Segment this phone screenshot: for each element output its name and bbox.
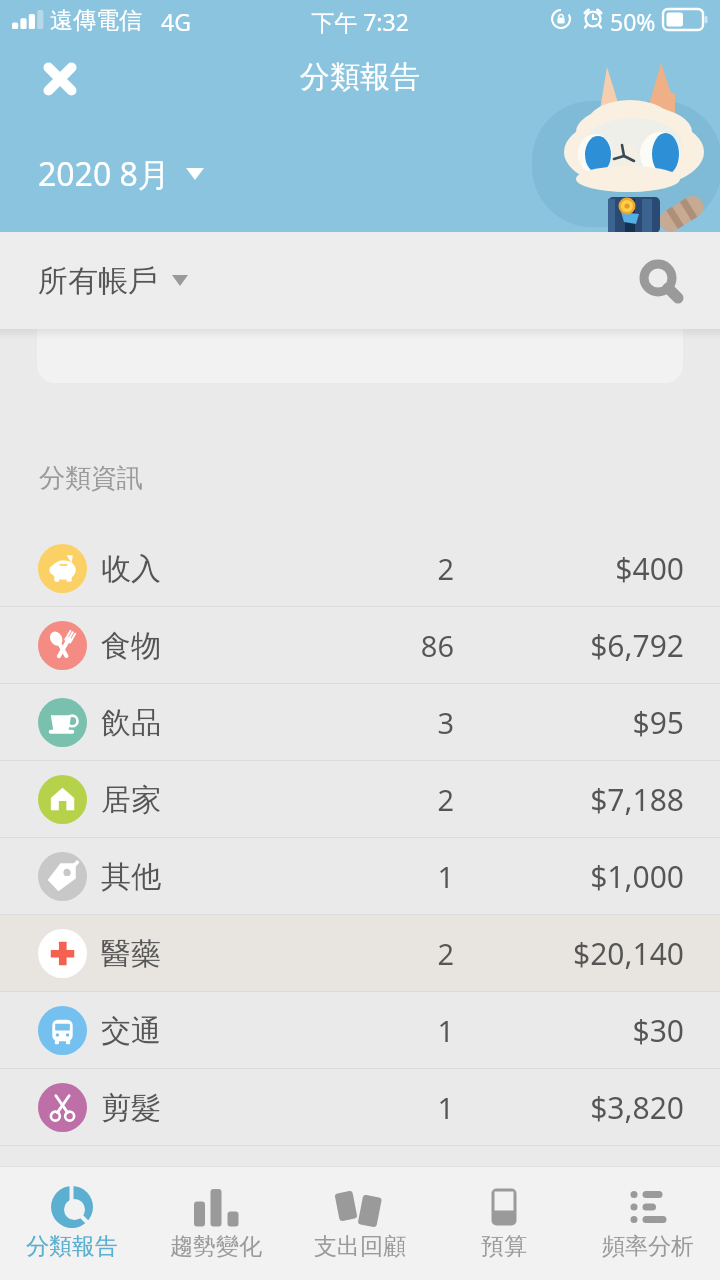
staticText: 分類資訊 bbox=[39, 462, 143, 495]
staticText: 1 bbox=[334, 1088, 454, 1127]
button[interactable]: 趨勢變化 bbox=[144, 1166, 288, 1280]
staticText: 分類報告 bbox=[0, 58, 720, 96]
staticText: 1 bbox=[334, 1011, 454, 1050]
staticText: 交通 bbox=[101, 1012, 161, 1050]
button[interactable]: 食物 bbox=[0, 607, 720, 684]
staticText: 醫藥 bbox=[101, 935, 161, 973]
staticText: 其他 bbox=[101, 858, 161, 896]
staticText: $6,792 bbox=[486, 625, 684, 666]
staticText: $20,140 bbox=[486, 933, 684, 974]
staticText: 頻率分析 bbox=[602, 1232, 694, 1261]
staticText: 分類報告 bbox=[26, 1232, 118, 1261]
staticText: 飲品 bbox=[101, 704, 161, 742]
button[interactable]: 2020 8月 bbox=[38, 152, 204, 196]
staticText: 食物 bbox=[101, 627, 161, 665]
button[interactable]: 分類報告 bbox=[0, 1166, 144, 1280]
staticText: 收入 bbox=[101, 550, 161, 588]
staticText: 2020 8月 bbox=[38, 152, 170, 196]
staticText: 50% bbox=[610, 6, 656, 37]
button[interactable]: 預算 bbox=[432, 1166, 576, 1280]
button[interactable]: Close bbox=[36, 55, 84, 103]
staticText: $30 bbox=[486, 1010, 684, 1051]
button[interactable]: 醫藥 bbox=[0, 915, 720, 992]
staticText: $400 bbox=[486, 548, 684, 589]
staticText: 預算 bbox=[481, 1232, 527, 1261]
button[interactable]: 交通 bbox=[0, 992, 720, 1069]
staticText: 2 bbox=[334, 780, 454, 819]
staticText: 支出回顧 bbox=[314, 1232, 406, 1261]
staticText: 下午 7:32 bbox=[0, 6, 720, 37]
button[interactable]: 其他 bbox=[0, 838, 720, 915]
button[interactable]: Search bbox=[624, 245, 696, 317]
staticText: 2 bbox=[334, 934, 454, 973]
staticText: 所有帳戶 bbox=[38, 262, 158, 300]
staticText: 4G bbox=[161, 6, 191, 37]
staticText: 2 bbox=[334, 549, 454, 588]
staticText: $3,820 bbox=[486, 1087, 684, 1128]
button[interactable]: 剪髮 bbox=[0, 1069, 720, 1146]
button[interactable]: 頻率分析 bbox=[576, 1166, 720, 1280]
staticText: 3 bbox=[334, 703, 454, 742]
button[interactable]: 居家 bbox=[0, 761, 720, 838]
staticText: 趨勢變化 bbox=[170, 1232, 262, 1261]
staticText: $1,000 bbox=[486, 856, 684, 897]
staticText: $7,188 bbox=[486, 779, 684, 820]
staticText: 遠傳電信 bbox=[50, 6, 142, 35]
button[interactable]: 支出回顧 bbox=[288, 1166, 432, 1280]
staticText: $95 bbox=[486, 702, 684, 743]
staticText: 86 bbox=[334, 626, 454, 665]
staticText: 居家 bbox=[101, 781, 161, 819]
button[interactable]: 收入 bbox=[0, 530, 720, 607]
button[interactable]: 飲品 bbox=[0, 684, 720, 761]
staticText: 1 bbox=[334, 857, 454, 896]
staticText: 剪髮 bbox=[101, 1089, 161, 1127]
